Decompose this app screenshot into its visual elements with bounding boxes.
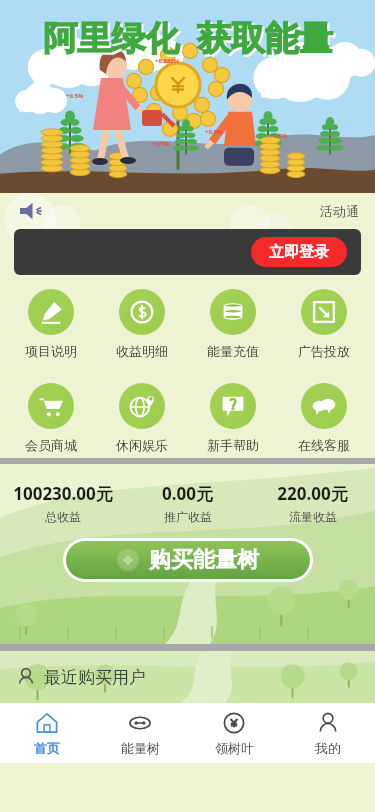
button[interactable]: 领树叶 (187, 703, 281, 763)
button[interactable]: 购买能量树 (66, 541, 310, 579)
staticText: 0.00元 (162, 482, 213, 505)
staticText: 广告投放 (298, 343, 350, 359)
staticText: 休闲娱乐 (116, 437, 168, 453)
staticText: 220.00元 (277, 482, 348, 505)
button[interactable]: 立即登录 (251, 237, 347, 267)
staticText: 购买能量树 (149, 546, 259, 574)
staticText: 最近购买用户 (44, 667, 146, 688)
staticText: 会员商城 (25, 437, 77, 453)
staticText: +0.5% (270, 132, 288, 140)
staticText: 收益明细 (116, 343, 168, 359)
staticText: 能量充值 (207, 343, 259, 359)
staticText: 总收益 (45, 509, 81, 524)
button[interactable]: 我的 (281, 703, 375, 763)
staticText: 流量收益 (289, 509, 337, 524)
other: 用户 (16, 667, 36, 687)
staticText: 我的 (315, 740, 341, 756)
button[interactable]: 立即登录 (14, 229, 361, 275)
staticText: +0.5% (205, 128, 223, 136)
button[interactable]: 广告投放 (284, 287, 364, 361)
button[interactable]: 在线客服 (284, 381, 364, 455)
staticText: 领树叶 (215, 740, 254, 756)
staticText: +8.885% (155, 57, 180, 65)
other: 公告 (18, 200, 40, 222)
button[interactable]: 能量充值 (193, 287, 273, 361)
staticText: 在线客服 (298, 437, 350, 453)
staticText: 阿里绿化 获取能量 (43, 14, 333, 60)
staticText: 推广收益 (164, 509, 212, 524)
button[interactable]: 首页 (0, 703, 93, 763)
staticText: 立即登录 (269, 243, 329, 262)
button[interactable]: 能量树 (93, 703, 187, 763)
staticText: 项目说明 (25, 343, 77, 359)
button[interactable]: 用户 (16, 651, 375, 703)
staticText: +0.5% (66, 92, 84, 100)
staticText: 能量树 (121, 740, 160, 756)
staticText: 首页 (34, 740, 60, 756)
staticText: 阿里绿化 获取能量 (45, 16, 335, 62)
button[interactable]: 新手帮助 (193, 381, 273, 455)
button[interactable]: 会员商城 (11, 381, 91, 455)
staticText: 活动通 (320, 203, 359, 219)
button[interactable]: 收益明细 (102, 287, 182, 361)
staticText: +0.5% (152, 140, 170, 148)
staticText: 新手帮助 (207, 437, 259, 453)
button[interactable]: 项目说明 (11, 287, 91, 361)
staticText: 100230.00元 (13, 482, 113, 505)
button[interactable]: 休闲娱乐 (102, 381, 182, 455)
